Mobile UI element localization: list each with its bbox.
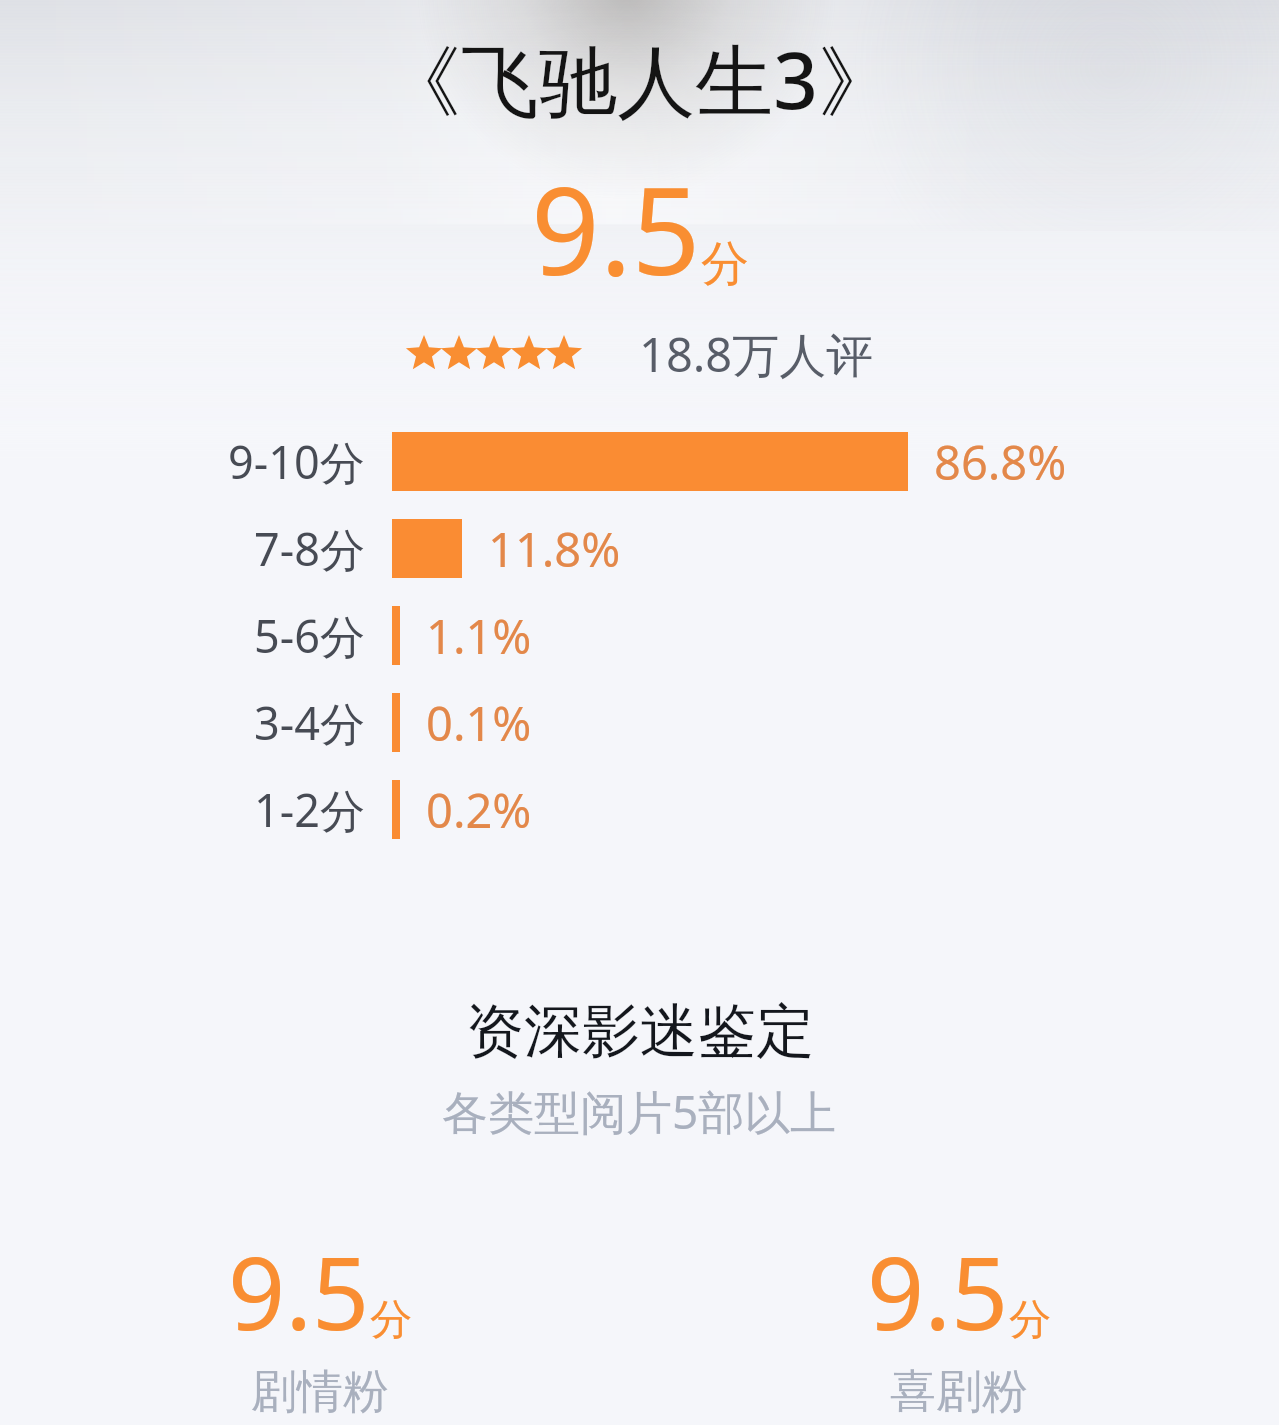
button[interactable]: 3-4分 bbox=[0, 679, 1279, 766]
button[interactable]: 9-10分 bbox=[0, 418, 1279, 505]
staticText: 86.8% bbox=[934, 430, 1067, 494]
staticText: 11.8% bbox=[488, 517, 621, 581]
staticText: 各类型阅片5部以上 bbox=[442, 1080, 837, 1143]
staticText: 9.5 bbox=[228, 1223, 370, 1359]
staticText: 5-6分 bbox=[254, 605, 365, 666]
staticText: 1-2分 bbox=[254, 779, 365, 840]
staticText: 1.1% bbox=[426, 604, 532, 668]
button[interactable]: 7-8分 bbox=[0, 505, 1279, 592]
staticText: 18.8万人评 bbox=[639, 322, 874, 386]
staticText: 0.2% bbox=[426, 778, 532, 842]
staticText: 9.5 bbox=[531, 147, 701, 310]
staticText: 分 bbox=[701, 234, 749, 294]
staticText: 9-10分 bbox=[228, 431, 365, 492]
staticText: 7-8分 bbox=[254, 518, 365, 579]
staticText: 喜剧粉 bbox=[890, 1363, 1028, 1421]
staticText: 资深影迷鉴定 bbox=[466, 995, 814, 1068]
button[interactable]: 9.5 bbox=[639, 1223, 1279, 1421]
staticText: 分 bbox=[1009, 1294, 1051, 1347]
button[interactable]: 5-6分 bbox=[0, 592, 1279, 679]
button[interactable]: 1-2分 bbox=[0, 766, 1279, 853]
staticText: 9.5 bbox=[867, 1223, 1009, 1359]
staticText: 分 bbox=[370, 1294, 412, 1347]
staticText: 《飞驰人生3》 bbox=[383, 26, 896, 133]
staticText: 0.1% bbox=[426, 691, 532, 755]
button[interactable]: 9.5 bbox=[0, 1223, 639, 1421]
staticText: 3-4分 bbox=[254, 692, 365, 753]
button[interactable]: 18.8万人评 bbox=[405, 322, 874, 386]
staticText: 剧情粉 bbox=[251, 1363, 389, 1421]
